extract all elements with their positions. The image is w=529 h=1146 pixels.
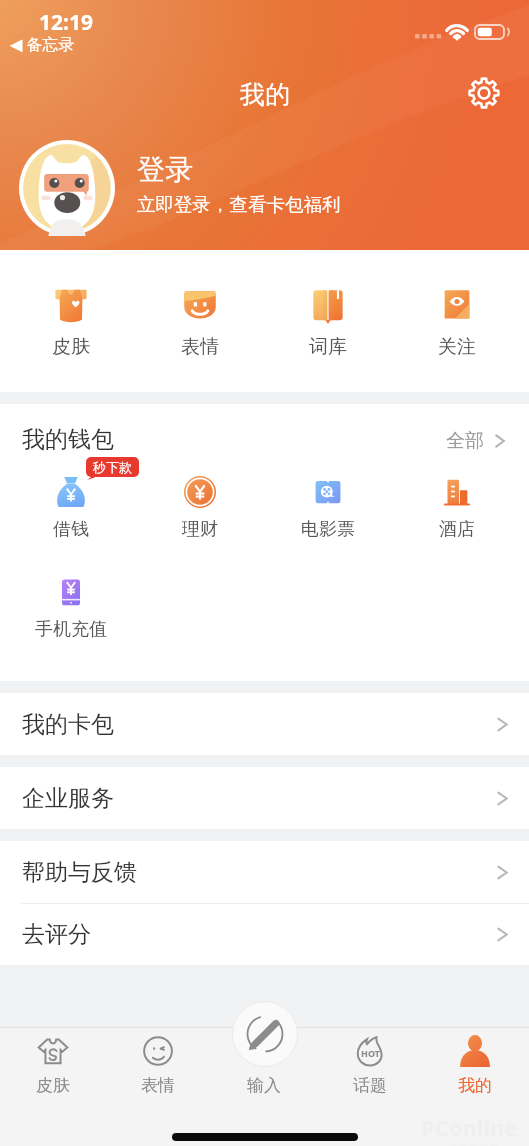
button[interactable]: 借钱	[28, 475, 114, 541]
button[interactable]: 全部	[440, 423, 512, 459]
staticText: 皮肤	[36, 1075, 70, 1096]
button[interactable]: 我的卡包	[0, 693, 529, 755]
staticText: 电影票	[301, 518, 355, 541]
button[interactable]: 关注	[414, 286, 500, 359]
button[interactable]: HOT	[328, 1033, 412, 1137]
staticText: 登录	[137, 152, 193, 187]
staticText: 关注	[438, 335, 476, 359]
button[interactable]: 词库	[285, 286, 371, 359]
button[interactable]: 去评分	[0, 903, 529, 965]
staticText: 秒下款	[93, 459, 132, 475]
button[interactable]: 手机充值	[28, 575, 114, 641]
staticText: 表情	[141, 1075, 175, 1096]
button[interactable]: 输入	[222, 1033, 306, 1137]
button[interactable]: 电影票	[285, 475, 371, 541]
staticText: 话题	[353, 1075, 387, 1096]
button[interactable]: 帮助与反馈	[0, 841, 529, 903]
staticText: 12:19	[39, 8, 93, 37]
staticText: 企业服务	[22, 784, 114, 813]
button[interactable]: 输入	[232, 1001, 298, 1067]
staticText: 我的	[458, 1075, 492, 1096]
staticText: 词库	[309, 335, 347, 359]
staticText: 表情	[181, 335, 219, 359]
staticText: 帮助与反馈	[22, 858, 137, 887]
staticText: 去评分	[22, 920, 91, 949]
button[interactable]: 理财	[157, 475, 243, 541]
button[interactable]: 企业服务	[0, 767, 529, 829]
staticText: 酒店	[439, 518, 475, 541]
button[interactable]: 头像	[19, 140, 115, 236]
staticText: 我的	[240, 79, 290, 110]
staticText: HOT	[361, 1047, 380, 1059]
staticText: ◀ 备忘录	[10, 33, 75, 55]
button[interactable]: 登录	[137, 152, 341, 216]
button[interactable]: 酒店	[414, 475, 500, 541]
button[interactable]: 表情	[157, 286, 243, 359]
staticText: 立即登录，查看卡包福利	[137, 193, 341, 216]
staticText: 输入	[247, 1075, 281, 1096]
staticText: 我的钱包	[22, 425, 114, 454]
button[interactable]: 皮肤	[11, 1033, 95, 1137]
staticText: 手机充值	[35, 618, 107, 641]
staticText: 皮肤	[52, 335, 90, 359]
staticText: 我的卡包	[22, 710, 114, 739]
staticText: 全部	[446, 429, 484, 453]
button[interactable]: 皮肤	[28, 286, 114, 359]
staticText: 借钱	[53, 518, 89, 541]
button[interactable]: 设置	[464, 73, 504, 113]
staticText: 理财	[182, 518, 218, 541]
button[interactable]: 我的	[433, 1033, 517, 1137]
button[interactable]: 表情	[116, 1033, 200, 1137]
